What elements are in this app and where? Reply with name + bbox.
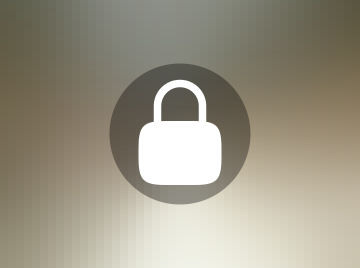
button[interactable]: Locked [109,63,250,204]
